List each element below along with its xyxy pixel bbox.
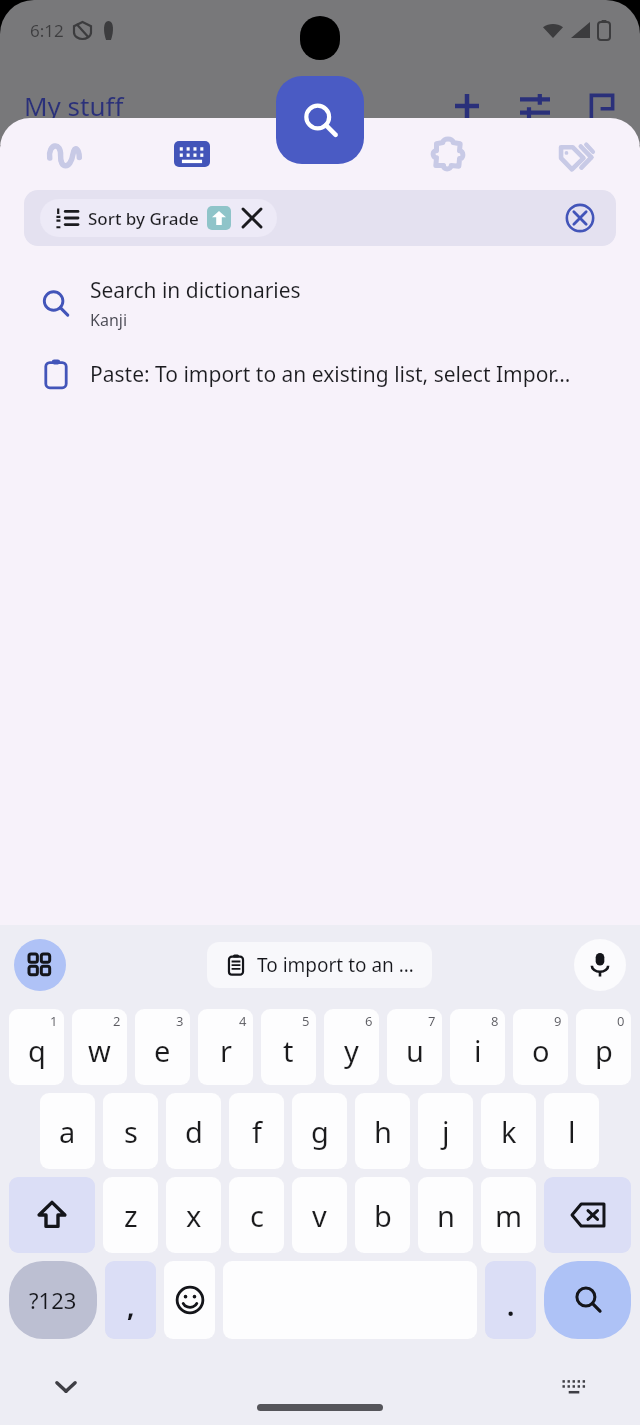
staticText: r <box>220 1031 232 1070</box>
staticText: z <box>124 1196 138 1235</box>
staticText: d <box>185 1112 203 1151</box>
button[interactable]: , <box>105 1261 156 1339</box>
staticText: t <box>283 1031 294 1070</box>
staticText: x <box>186 1196 202 1235</box>
staticText: 0 <box>617 1012 625 1030</box>
button[interactable]: v <box>292 1177 347 1253</box>
button[interactable]: Toolbar <box>14 939 66 991</box>
button[interactable]: a <box>40 1093 95 1169</box>
button[interactable]: o <box>513 1009 568 1085</box>
button[interactable]: Clear all filters <box>560 198 600 238</box>
button[interactable]: f <box>229 1093 284 1169</box>
staticText: e <box>154 1031 171 1070</box>
staticText: u <box>406 1031 424 1070</box>
staticText: f <box>252 1112 262 1151</box>
button[interactable]: u <box>387 1009 442 1085</box>
button[interactable]: g <box>292 1093 347 1169</box>
staticText: b <box>374 1196 392 1235</box>
staticText: My stuff <box>24 88 124 123</box>
staticText: Paste: To import to an existing list, se… <box>90 360 571 389</box>
button[interactable]: Stickers <box>549 127 603 181</box>
button[interactable]: Paste: To import to an existing list, se… <box>0 353 640 395</box>
staticText: n <box>437 1196 455 1235</box>
button[interactable]: y <box>324 1009 379 1085</box>
staticText: 9 <box>554 1012 562 1030</box>
staticText: j <box>442 1112 450 1151</box>
button[interactable]: s <box>103 1093 158 1169</box>
button[interactable]: To import to an … <box>207 942 432 988</box>
button[interactable]: q <box>9 1009 64 1085</box>
staticText: 7 <box>428 1012 436 1030</box>
button[interactable]: j <box>418 1093 473 1169</box>
staticText: 4 <box>239 1012 247 1030</box>
staticText: c <box>250 1196 264 1235</box>
staticText: 5 <box>302 1012 310 1030</box>
button[interactable]: e <box>135 1009 190 1085</box>
staticText: w <box>88 1031 111 1070</box>
staticText: . <box>507 1288 515 1323</box>
staticText: k <box>501 1112 517 1151</box>
button[interactable]: Backspace <box>544 1177 631 1253</box>
button[interactable]: Switch keyboard <box>550 1363 598 1411</box>
button[interactable]: Emoji <box>164 1261 215 1339</box>
staticText: 6:12 <box>30 19 64 42</box>
button[interactable]: Extensions <box>421 127 475 181</box>
staticText: o <box>532 1031 550 1070</box>
staticText: Search in dictionaries <box>90 276 301 305</box>
button[interactable]: p <box>576 1009 631 1085</box>
button[interactable]: z <box>103 1177 158 1253</box>
button[interactable]: Shift <box>9 1177 95 1253</box>
staticText: m <box>495 1196 523 1235</box>
staticText: q <box>28 1031 46 1070</box>
button[interactable]: Handwriting <box>37 127 91 181</box>
button[interactable]: l <box>544 1093 599 1169</box>
staticText: i <box>474 1031 482 1070</box>
staticText: 2 <box>113 1012 121 1030</box>
button[interactable]: Search in dictionaries <box>0 270 640 337</box>
staticText: a <box>59 1112 76 1151</box>
staticText: To import to an … <box>257 952 414 978</box>
staticText: g <box>311 1112 329 1151</box>
staticText: y <box>344 1031 359 1070</box>
staticText: s <box>124 1112 138 1151</box>
button[interactable]: x <box>166 1177 221 1253</box>
button[interactable]: i <box>450 1009 505 1085</box>
button[interactable]: n <box>418 1177 473 1253</box>
button[interactable]: r <box>198 1009 253 1085</box>
button[interactable]: Search <box>276 76 364 164</box>
button[interactable]: b <box>355 1177 410 1253</box>
staticText: 6 <box>365 1012 373 1030</box>
staticText: 8 <box>491 1012 499 1030</box>
button[interactable]: d <box>166 1093 221 1169</box>
staticText: 1 <box>50 1012 58 1030</box>
staticText: Sort by Grade <box>88 207 199 230</box>
staticText: v <box>312 1196 327 1235</box>
button[interactable]: Hide keyboard <box>42 1363 90 1411</box>
staticText: h <box>374 1112 392 1151</box>
staticText: ?123 <box>29 1285 77 1315</box>
staticText: , <box>127 1289 135 1324</box>
button[interactable]: Voice input <box>574 939 626 991</box>
button[interactable]: c <box>229 1177 284 1253</box>
staticText: l <box>568 1112 576 1151</box>
button[interactable]: Search <box>544 1261 631 1339</box>
button[interactable]: Sort by Grade <box>40 199 277 237</box>
button[interactable]: Keyboard <box>165 127 219 181</box>
button[interactable]: w <box>72 1009 127 1085</box>
button[interactable]: h <box>355 1093 410 1169</box>
button[interactable]: k <box>481 1093 536 1169</box>
button[interactable]: m <box>481 1177 536 1253</box>
button[interactable]: . <box>485 1261 536 1339</box>
staticText: p <box>595 1031 613 1070</box>
button[interactable]: ?123 <box>9 1261 97 1339</box>
staticText: Kanji <box>90 309 128 331</box>
button[interactable]: t <box>261 1009 316 1085</box>
staticText: 3 <box>176 1012 184 1030</box>
